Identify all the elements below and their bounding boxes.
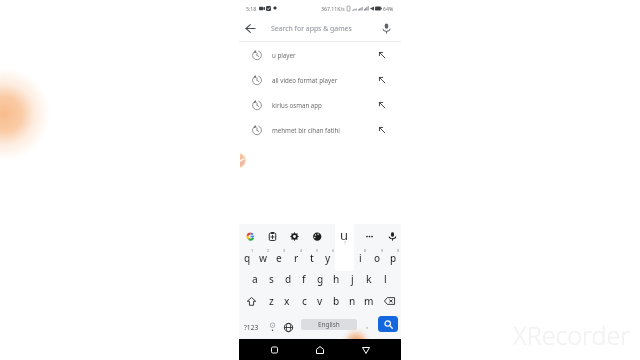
staticText: c (302, 294, 307, 308)
button[interactable]: k (361, 268, 377, 290)
button[interactable]: Home (312, 342, 328, 358)
staticText: u (340, 226, 349, 244)
staticText: o (374, 251, 381, 265)
button[interactable]: g (312, 268, 328, 290)
button[interactable]: Google search (246, 232, 255, 241)
button[interactable]: s (263, 268, 279, 290)
button[interactable]: ?123 (239, 316, 264, 338)
staticText: d (285, 272, 292, 286)
button[interactable]: Clipboard (268, 232, 277, 241)
button[interactable]: Comma (264, 316, 280, 338)
staticText: 367.11K/s (321, 5, 345, 12)
staticText: 3 (283, 248, 286, 253)
button[interactable]: a (247, 268, 263, 290)
button[interactable]: c (296, 290, 312, 312)
staticText: 64% (383, 5, 394, 12)
staticText: q (244, 251, 251, 265)
staticText: kirlus osman app (272, 101, 322, 109)
button[interactable]: r (288, 247, 304, 269)
staticText: j (351, 272, 354, 286)
staticText: z (269, 294, 274, 308)
staticText: English (318, 320, 340, 329)
button[interactable]: d (280, 268, 296, 290)
staticText: 9 (381, 248, 384, 253)
staticText: t (310, 251, 314, 265)
staticText: l (384, 272, 387, 286)
button[interactable]: Recents (266, 342, 282, 358)
button[interactable]: b (328, 290, 344, 312)
staticText: Search for apps & games (271, 24, 352, 33)
button[interactable]: l (377, 268, 393, 290)
button[interactable]: x (279, 290, 295, 312)
staticText: mehmet bir cihan fatihi (272, 126, 340, 134)
staticText: e (276, 251, 282, 265)
button[interactable]: f (296, 268, 312, 290)
button[interactable]: Voice search (378, 20, 395, 37)
button[interactable]: Keyboard settings (290, 232, 299, 241)
button[interactable]: m (361, 290, 377, 312)
staticText: 0 (397, 248, 400, 253)
button[interactable]: English (301, 319, 357, 330)
button[interactable]: More options (365, 232, 374, 241)
button[interactable]: Voice input (388, 232, 397, 241)
staticText: 2 (267, 248, 270, 253)
staticText: 8 (364, 248, 367, 253)
staticText: y (325, 251, 331, 265)
button[interactable]: n (344, 290, 360, 312)
button[interactable]: Search (378, 316, 398, 332)
staticText: h (333, 272, 340, 286)
staticText: 5 (316, 248, 319, 253)
staticText: b (333, 294, 340, 308)
staticText: u player (272, 51, 296, 59)
button[interactable]: Change language (280, 316, 296, 338)
staticText: XRecorder (513, 318, 631, 352)
staticText: k (366, 272, 372, 286)
staticText: n (349, 294, 356, 308)
staticText: i (359, 251, 362, 265)
staticText: s (269, 272, 274, 286)
staticText: x (284, 294, 290, 308)
button[interactable]: all video format player (239, 67, 401, 92)
button[interactable]: p (385, 247, 401, 269)
button[interactable]: e (271, 247, 287, 269)
button[interactable]: z (263, 290, 279, 312)
button[interactable]: Shift (239, 290, 263, 312)
button[interactable]: w (255, 247, 271, 269)
button[interactable]: Back (242, 20, 259, 37)
staticText: ?123 (244, 323, 259, 332)
button[interactable]: Stickers (313, 232, 322, 241)
button[interactable]: Back (358, 342, 374, 358)
button[interactable]: y (320, 247, 336, 269)
button[interactable]: i (352, 247, 368, 269)
button[interactable]: o (369, 247, 385, 269)
button[interactable]: v (312, 290, 328, 312)
staticText: v (317, 294, 323, 308)
button[interactable]: h (328, 268, 344, 290)
staticText: all video format player (272, 76, 338, 84)
staticText: 5:18 (246, 5, 257, 12)
button[interactable]: j (344, 268, 360, 290)
staticText: w (259, 251, 268, 265)
staticText: 6 (332, 248, 335, 253)
button[interactable]: kirlus osman app (239, 92, 401, 117)
staticText: r (294, 251, 299, 265)
button[interactable]: mehmet bir cihan fatihi (239, 117, 401, 142)
staticText: p (390, 251, 397, 265)
staticText: a (252, 272, 258, 286)
button[interactable]: Backspace (377, 290, 401, 312)
button[interactable]: t (304, 247, 320, 269)
staticText: g (317, 272, 324, 286)
button[interactable]: Period (360, 316, 374, 338)
staticText: 4 (300, 248, 303, 253)
button[interactable]: q (239, 247, 255, 269)
staticText: 7 (344, 240, 347, 245)
button[interactable]: u player (239, 42, 401, 67)
staticText: f (302, 272, 306, 286)
staticText: 1 (251, 248, 254, 253)
staticText: m (364, 294, 374, 308)
